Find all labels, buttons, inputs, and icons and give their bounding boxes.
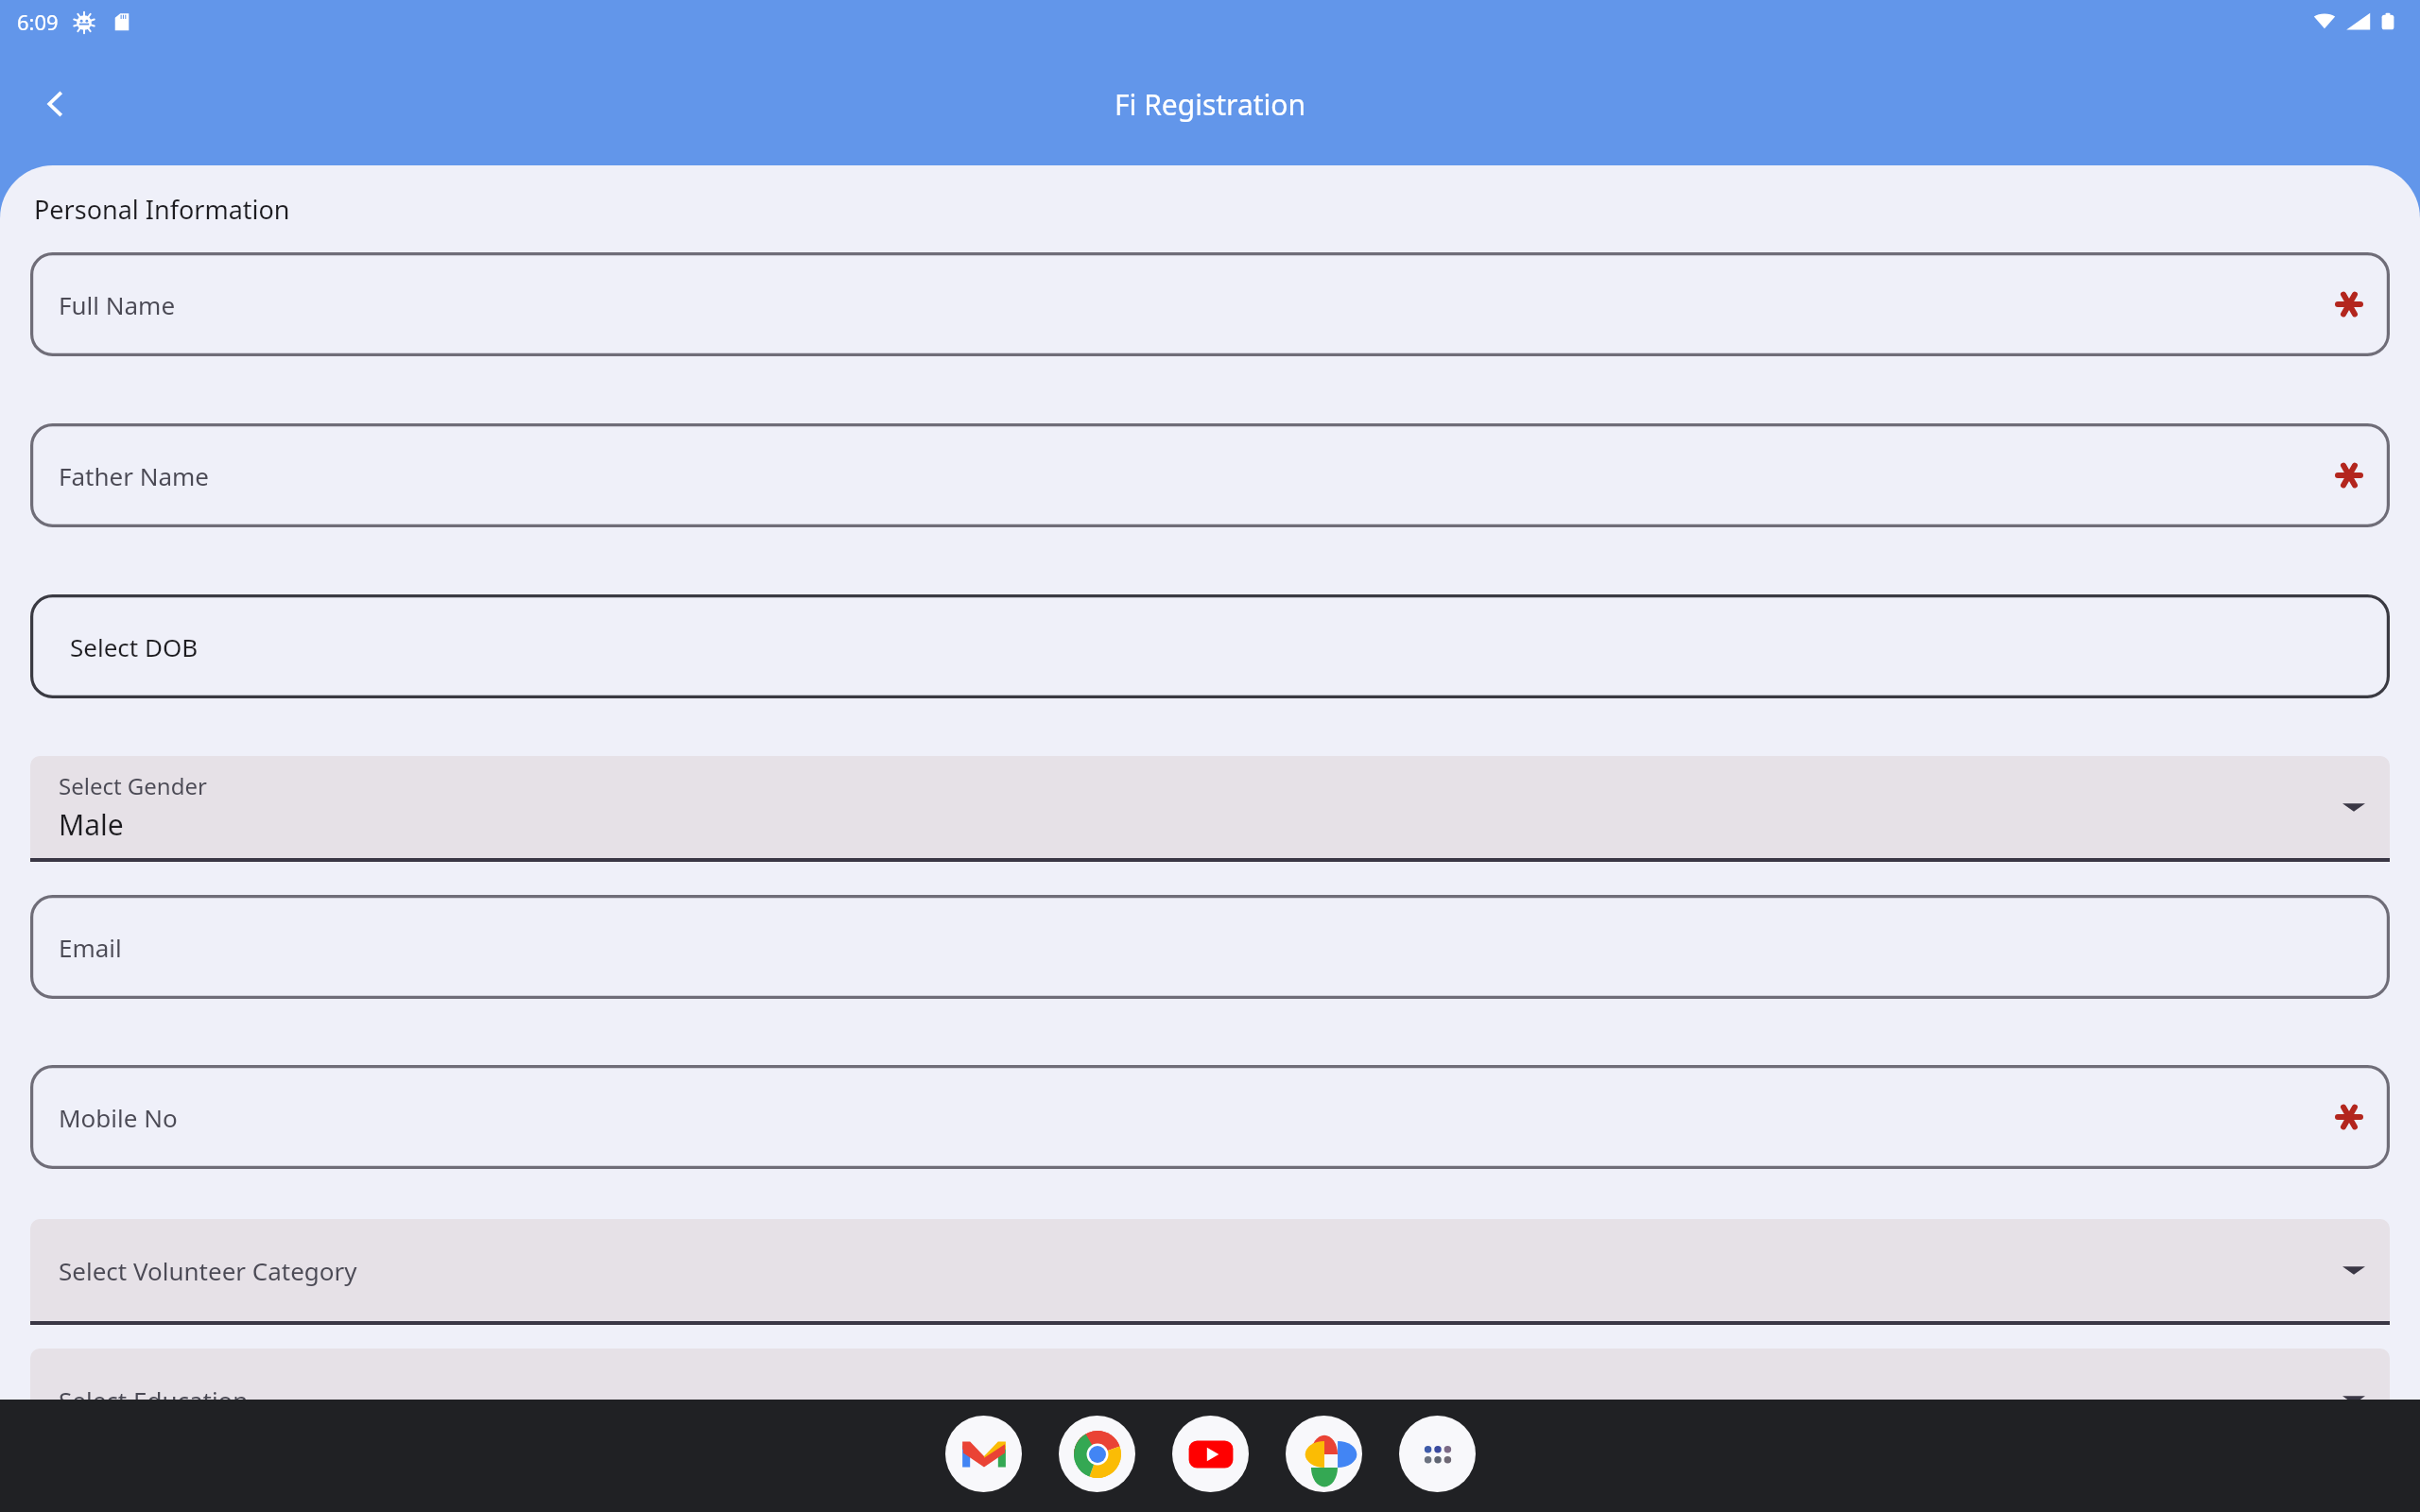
staticText: Select DOB — [70, 630, 199, 663]
button[interactable]: Select Gender — [30, 756, 2390, 862]
staticText: Mobile No — [59, 1101, 178, 1134]
button[interactable]: Select Volunteer Category — [30, 1219, 2390, 1325]
staticText: 6:09 — [17, 8, 59, 36]
staticText: Fi Registration — [1115, 85, 1305, 124]
button[interactable]: Select Education — [30, 1349, 2390, 1454]
button[interactable]: Back — [28, 77, 81, 130]
button[interactable]: Chrome — [1059, 1416, 1135, 1492]
button[interactable]: Select DOB — [30, 594, 2390, 698]
button[interactable]: Full Name — [30, 252, 2390, 356]
staticText: Full Name — [59, 288, 176, 321]
button[interactable]: Father Name — [30, 423, 2390, 527]
staticText: Select Education — [59, 1383, 249, 1417]
staticText: Personal Information — [34, 192, 290, 227]
button[interactable]: Email — [30, 895, 2390, 999]
staticText: Father Name — [59, 459, 210, 492]
button[interactable]: Mobile No — [30, 1065, 2390, 1169]
button[interactable]: All apps — [1399, 1416, 1476, 1492]
button[interactable]: YouTube — [1172, 1416, 1249, 1492]
button[interactable]: Gmail — [945, 1416, 1022, 1492]
button[interactable]: Photos — [1286, 1416, 1362, 1492]
staticText: Email — [59, 931, 122, 964]
staticText: Male — [59, 805, 124, 844]
staticText: Select Gender — [59, 770, 207, 801]
staticText: Select Volunteer Category — [59, 1254, 357, 1287]
